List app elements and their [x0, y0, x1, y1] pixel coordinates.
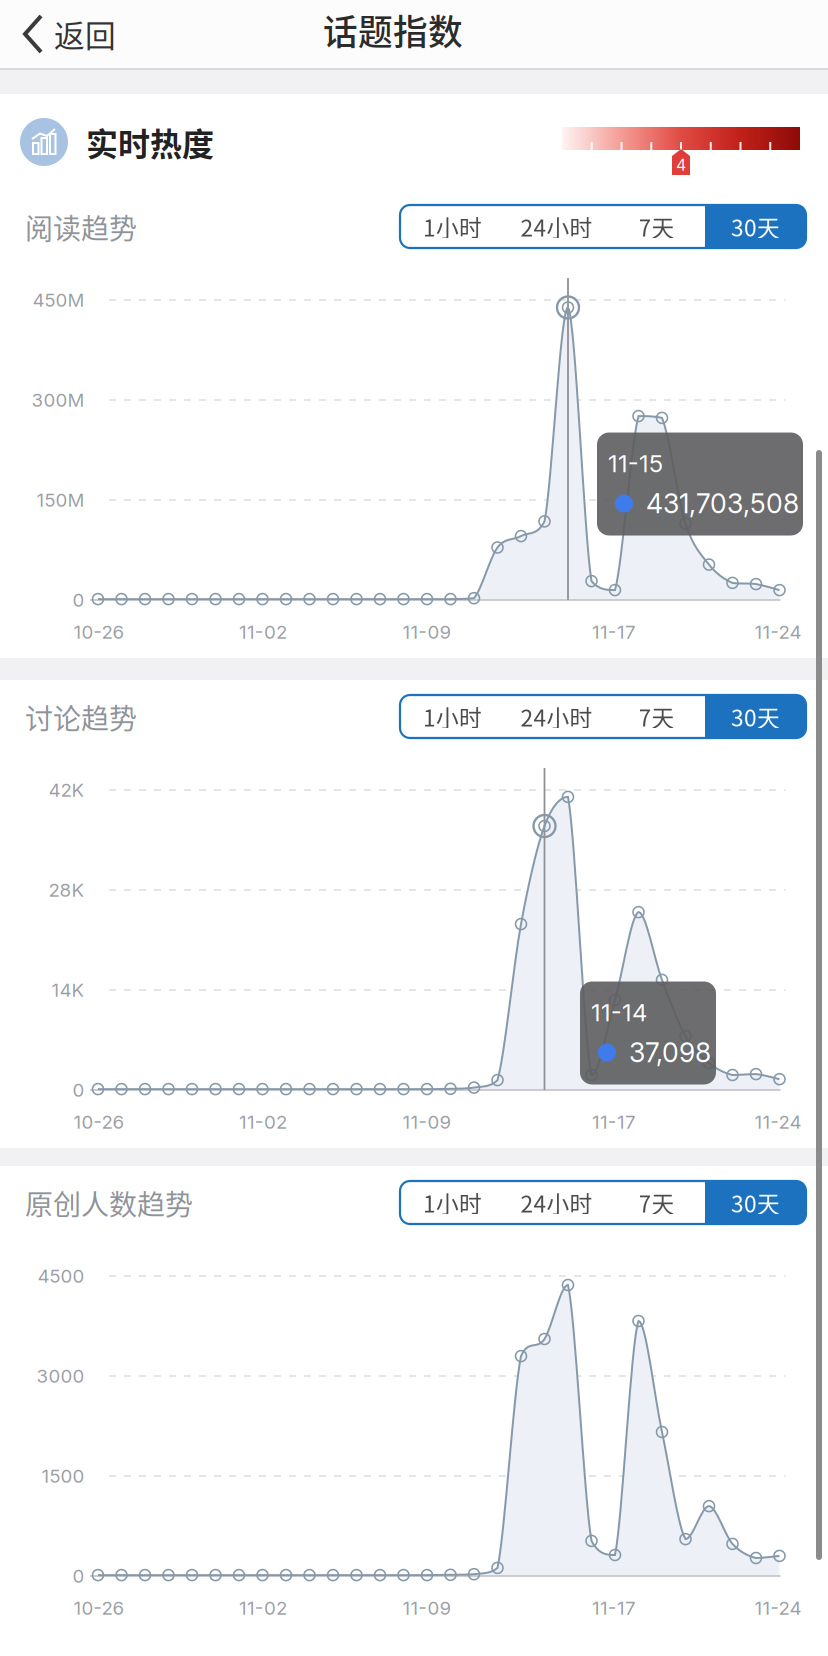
- staticText: 11-17: [592, 1111, 636, 1133]
- staticText: 1500: [41, 1465, 84, 1487]
- staticText: 11-17: [592, 1597, 636, 1619]
- staticText: 14K: [51, 979, 84, 1001]
- staticText: 阅读趋势: [25, 207, 137, 247]
- staticText: 3000: [36, 1365, 84, 1387]
- staticText: 10-26: [73, 1111, 124, 1133]
- staticText: 0: [72, 1079, 84, 1101]
- staticText: 24小时: [520, 210, 592, 243]
- staticText: 11-02: [239, 621, 287, 643]
- staticText: 1小时: [423, 1186, 482, 1219]
- staticText: 10-26: [73, 1597, 124, 1619]
- staticText: 37,098: [629, 1036, 711, 1069]
- button[interactable]: 7天: [608, 205, 705, 248]
- staticText: 11-02: [239, 1597, 287, 1619]
- staticText: 0: [72, 1565, 84, 1587]
- staticText: 30天: [731, 1186, 780, 1219]
- button[interactable]: 1小时: [400, 205, 505, 248]
- staticText: 30天: [731, 210, 780, 243]
- staticText: 原创人数趋势: [25, 1183, 193, 1223]
- staticText: 返回: [54, 12, 116, 56]
- staticText: 28K: [48, 879, 84, 901]
- staticText: 话题指数: [323, 5, 463, 55]
- staticText: 11-09: [402, 621, 451, 643]
- staticText: 10-26: [73, 621, 124, 643]
- staticText: 4: [676, 155, 686, 175]
- button[interactable]: 7天: [608, 1181, 705, 1224]
- button[interactable]: 30天: [705, 695, 806, 738]
- staticText: 150M: [36, 489, 84, 511]
- staticText: 11-17: [592, 621, 636, 643]
- staticText: 7天: [638, 1186, 674, 1219]
- staticText: 11-09: [402, 1111, 451, 1133]
- button[interactable]: 30天: [705, 205, 806, 248]
- staticText: 11-24: [754, 1111, 801, 1133]
- staticText: 450M: [32, 289, 84, 311]
- staticText: 24小时: [520, 1186, 592, 1219]
- staticText: 24小时: [520, 700, 592, 733]
- staticText: 11-14: [591, 998, 647, 1027]
- button[interactable]: 返回: [0, 0, 136, 68]
- button[interactable]: 24小时: [505, 1181, 608, 1224]
- staticText: 11-02: [239, 1111, 287, 1133]
- staticText: 30天: [731, 700, 780, 733]
- staticText: 11-15: [608, 449, 663, 478]
- staticText: 1小时: [423, 700, 482, 733]
- staticText: 11-24: [754, 1597, 801, 1619]
- staticText: 431,703,508: [646, 487, 799, 520]
- staticText: 7天: [638, 700, 674, 733]
- button[interactable]: 1小时: [400, 1181, 505, 1224]
- staticText: 0: [72, 589, 84, 611]
- staticText: 7天: [638, 210, 674, 243]
- button[interactable]: 7天: [608, 695, 705, 738]
- staticText: 实时热度: [86, 119, 214, 165]
- button[interactable]: 24小时: [505, 695, 608, 738]
- staticText: 讨论趋势: [25, 697, 137, 737]
- staticText: 11-24: [754, 621, 801, 643]
- button[interactable]: 24小时: [505, 205, 608, 248]
- staticText: 42K: [48, 779, 84, 801]
- button[interactable]: 1小时: [400, 695, 505, 738]
- staticText: 11-09: [402, 1597, 451, 1619]
- staticText: 4500: [37, 1265, 84, 1287]
- staticText: 1小时: [423, 210, 482, 243]
- staticText: 300M: [31, 389, 84, 411]
- button[interactable]: 30天: [705, 1181, 806, 1224]
